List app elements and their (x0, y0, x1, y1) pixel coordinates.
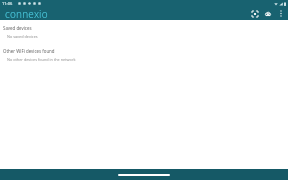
button[interactable]: Other WiFi devices found (0, 46, 288, 56)
button[interactable]: Saved devices (0, 23, 288, 33)
button[interactable]: Cloud sync (263, 9, 272, 18)
button[interactable]: Scan for devices (250, 9, 259, 18)
button[interactable]: Home (118, 174, 170, 176)
button[interactable]: No saved devices (0, 33, 288, 40)
button[interactable]: connexio (5, 7, 48, 20)
staticText: 11:06 (2, 1, 13, 6)
button[interactable]: No other devices found in the network (0, 56, 288, 63)
button[interactable]: More options (276, 9, 285, 18)
